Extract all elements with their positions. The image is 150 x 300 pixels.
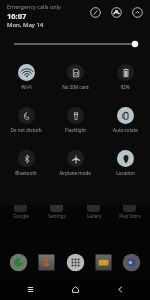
- button[interactable]: 92%: [101, 59, 149, 102]
- button[interactable]: Flashlight: [51, 102, 99, 145]
- staticText: Gallery: [86, 213, 102, 219]
- button[interactable]: Edit: [89, 6, 102, 19]
- button[interactable]: App 1: [37, 253, 56, 272]
- button[interactable]: Home: [60, 278, 90, 300]
- button[interactable]: Bluetooth: [2, 145, 50, 188]
- staticText: 92%: [120, 84, 130, 90]
- button[interactable]: App 4: [122, 253, 141, 272]
- button[interactable]: Airplane mode: [51, 145, 99, 188]
- staticText: Play Store: [119, 213, 141, 219]
- button[interactable]: Google: [4, 199, 37, 219]
- button[interactable]: Recents: [15, 278, 45, 300]
- staticText: Wi-Fi: [21, 84, 32, 90]
- button[interactable]: Auto-rotate: [101, 102, 149, 145]
- button[interactable]: Collapse: [131, 6, 144, 19]
- button[interactable]: Location: [101, 145, 149, 188]
- staticText: Settings: [48, 213, 66, 219]
- button[interactable]: Gallery: [77, 199, 110, 219]
- button[interactable]: Wi-Fi: [2, 59, 50, 102]
- button[interactable]: User: [110, 6, 123, 19]
- staticText: Auto-rotate: [113, 127, 138, 133]
- staticText: Do not disturb: [10, 127, 42, 133]
- button[interactable]: App 2: [66, 253, 85, 272]
- button[interactable]: App 3: [94, 253, 113, 272]
- staticText: Location: [116, 170, 135, 176]
- staticText: Emergency calls only: [7, 3, 61, 10]
- button[interactable]: Play Store: [113, 199, 146, 219]
- button[interactable]: App 0: [9, 253, 28, 272]
- staticText: No SIM card: [62, 84, 89, 90]
- button[interactable]: No SIM card: [51, 59, 99, 102]
- button[interactable]: Settings: [40, 199, 73, 219]
- staticText: Google: [13, 213, 29, 219]
- staticText: Flashlight: [65, 127, 86, 133]
- button[interactable]: Back: [105, 278, 135, 300]
- button[interactable]: Do not disturb: [2, 102, 50, 145]
- staticText: 16:07: [7, 11, 27, 21]
- staticText: Airplane mode: [59, 170, 91, 176]
- staticText: Bluetooth: [15, 170, 37, 176]
- staticText: Mon, May 14: [7, 21, 44, 29]
- button[interactable]: Brightness: [0, 37, 150, 51]
